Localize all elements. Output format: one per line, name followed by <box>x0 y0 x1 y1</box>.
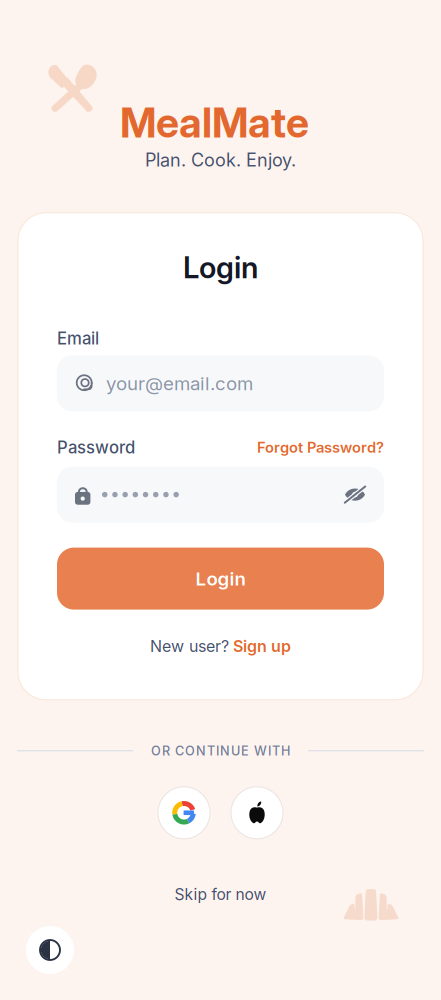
staticText: Plan. Cook. Enjoy. <box>145 149 296 171</box>
staticText: Sign up <box>233 637 291 656</box>
staticText: Login <box>195 567 245 590</box>
button[interactable]: Continue with Apple <box>231 787 283 839</box>
staticText: OR CONTINUE WITH <box>151 743 290 758</box>
staticText: Email <box>57 328 99 348</box>
button[interactable]: Sign up <box>233 637 291 656</box>
staticText: Password <box>57 437 135 458</box>
staticText: Skip for now <box>174 885 266 904</box>
button[interactable]: Skip for now <box>174 885 266 904</box>
staticText: Login <box>183 250 258 285</box>
staticText: Forgot Password? <box>257 439 384 456</box>
button[interactable]: Show password <box>344 484 366 505</box>
button[interactable]: Continue with Google <box>158 787 210 839</box>
staticText: your@email.com <box>106 372 253 395</box>
staticText: MealMate <box>120 98 309 147</box>
staticText: New user? <box>150 637 229 656</box>
button[interactable]: Toggle appearance <box>26 926 74 974</box>
button[interactable]: Forgot Password? <box>257 439 384 456</box>
button[interactable]: Login <box>57 548 384 610</box>
